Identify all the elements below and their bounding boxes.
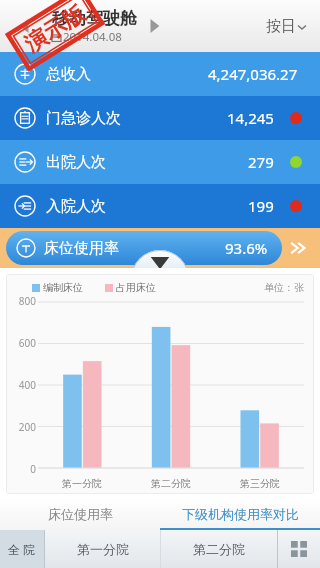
staticText: 单位：张 — [264, 281, 304, 294]
button[interactable]: More — [282, 231, 314, 265]
button[interactable]: 第二分院 — [161, 530, 277, 568]
staticText: 600 — [18, 336, 36, 348]
staticText: 移动驾驶舱 — [52, 8, 137, 29]
staticText: 总收入 — [46, 65, 91, 84]
button[interactable]: 入院人次 — [0, 184, 320, 228]
staticText: 200 — [18, 420, 36, 432]
staticText: 床位使用率 — [44, 239, 119, 258]
staticText: 2014.04.08 — [63, 29, 122, 45]
staticText: 199 — [248, 196, 274, 216]
staticText: 第二分院 — [193, 541, 245, 557]
button[interactable]: 床位使用率 — [0, 498, 160, 530]
staticText: 279 — [248, 152, 274, 172]
staticText: 演示版 — [20, 0, 90, 58]
staticText: 93.6% — [225, 238, 268, 258]
staticText: 下级机构使用率对比 — [182, 506, 299, 522]
staticText: 入院人次 — [46, 197, 106, 216]
button[interactable]: 总收入 — [0, 52, 320, 96]
staticText: 门急诊人次 — [46, 109, 121, 128]
staticText: 占用床位 — [116, 281, 156, 294]
button[interactable]: Next — [137, 9, 171, 43]
button[interactable]: 全 院 — [0, 530, 44, 568]
staticText: 第三分院 — [240, 477, 280, 490]
button[interactable]: 门急诊人次 — [0, 96, 320, 140]
staticText: 14,245 — [227, 108, 274, 128]
button[interactable]: 按日 — [260, 11, 312, 42]
staticText: 400 — [18, 378, 36, 390]
staticText: 编制床位 — [43, 281, 83, 294]
staticText: 第一分院 — [77, 541, 129, 557]
staticText: 800 — [18, 294, 36, 306]
button[interactable]: Previous — [8, 9, 42, 43]
button[interactable]: 床位使用率 — [6, 231, 282, 265]
button[interactable]: 下级机构使用率对比 — [160, 498, 320, 530]
button[interactable]: Expand — [131, 250, 189, 279]
staticText: 0 — [30, 462, 36, 474]
staticText: 全 院 — [8, 541, 36, 557]
button[interactable]: 出院人次 — [0, 140, 320, 184]
staticText: 第一分院 — [62, 477, 102, 490]
button[interactable]: Grid menu — [278, 530, 320, 568]
button[interactable]: 第一分院 — [45, 530, 160, 568]
staticText: 床位使用率 — [48, 506, 113, 522]
staticText: 出院人次 — [46, 153, 106, 172]
staticText: 4,247,036.27 — [208, 64, 298, 84]
staticText: 第二分院 — [151, 477, 191, 490]
staticText: 按日 — [266, 17, 296, 36]
